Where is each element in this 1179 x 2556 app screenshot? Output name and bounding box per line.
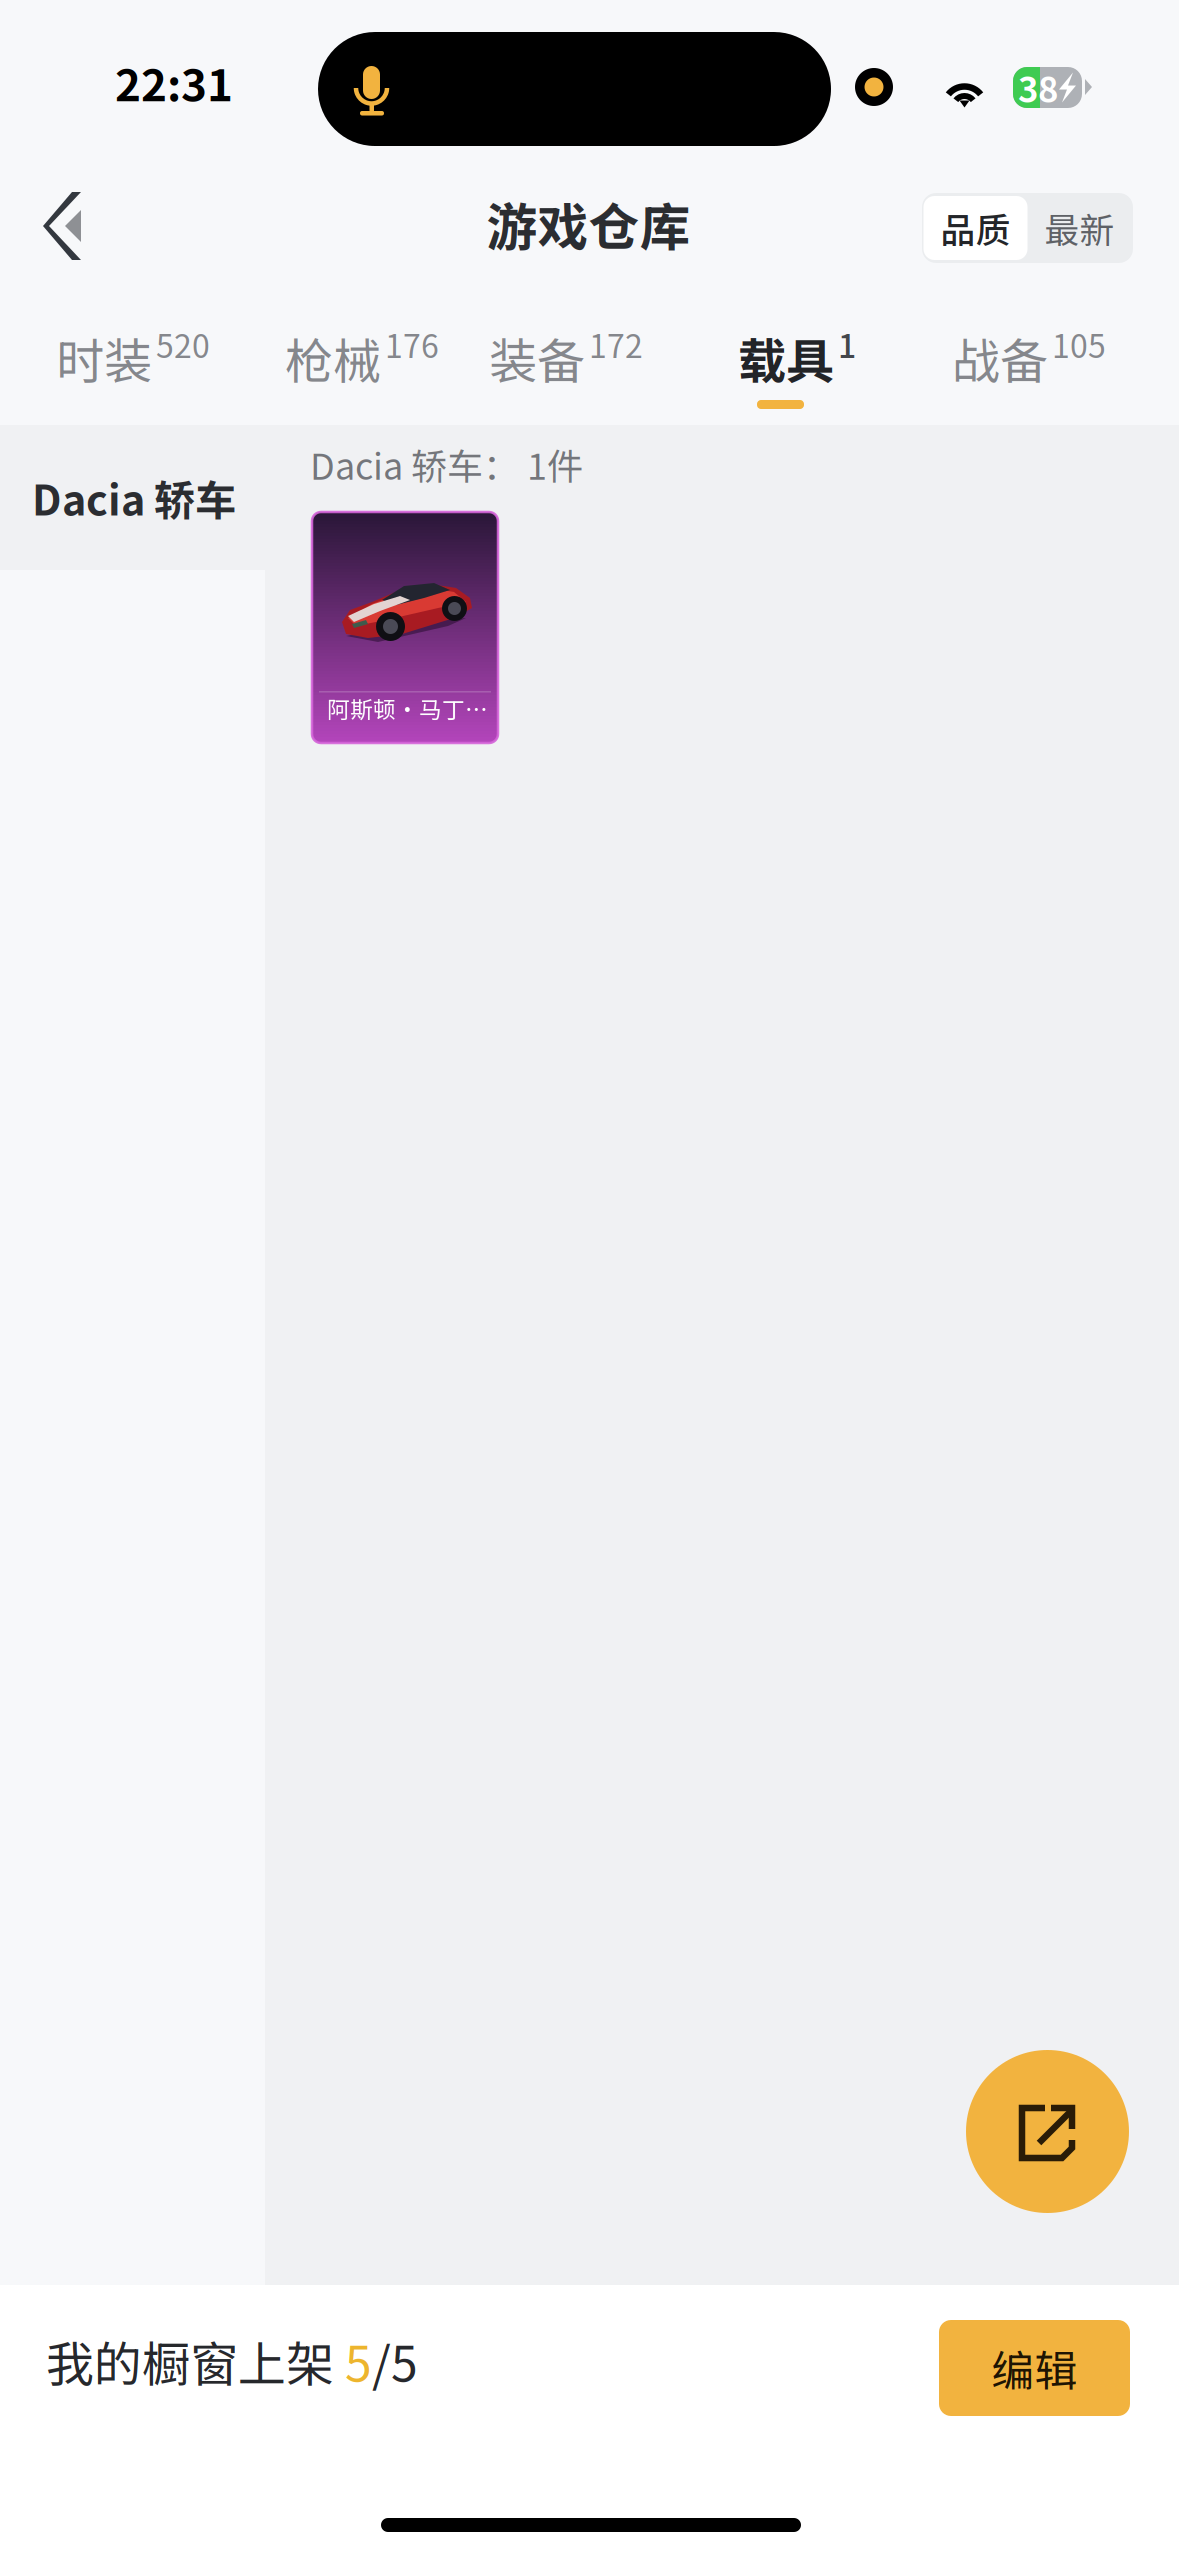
button[interactable]: 装备 bbox=[489, 294, 679, 425]
staticText: 载具 bbox=[738, 323, 834, 392]
staticText: 38 bbox=[1018, 62, 1058, 113]
staticText: 装备 bbox=[489, 323, 585, 392]
staticText: 520 bbox=[156, 321, 210, 367]
staticText: 时装 bbox=[56, 323, 152, 392]
button[interactable]: 时装 bbox=[56, 294, 246, 425]
button[interactable]: Share bbox=[966, 2050, 1129, 2213]
staticText: 最新 bbox=[1044, 203, 1114, 253]
button[interactable]: 品质 bbox=[923, 196, 1027, 260]
button[interactable]: 枪械 bbox=[285, 294, 475, 425]
staticText: 5 bbox=[345, 2326, 372, 2395]
staticText: 阿斯顿·马丁… bbox=[327, 692, 488, 724]
button[interactable]: Back bbox=[7, 170, 119, 282]
staticText: 战备 bbox=[952, 323, 1048, 392]
button[interactable]: Dacia 轿车 bbox=[0, 425, 265, 570]
button[interactable]: 编辑 bbox=[939, 2320, 1130, 2416]
staticText: 22:31 bbox=[115, 50, 233, 114]
staticText: Dacia 轿车： 1件 bbox=[310, 438, 583, 490]
staticText: 游戏仓库 bbox=[486, 187, 690, 260]
staticText: 品质 bbox=[940, 203, 1010, 253]
staticText: /5 bbox=[372, 2326, 418, 2395]
staticText: Dacia 轿车 bbox=[32, 468, 236, 527]
staticText: 我的橱窗上架 bbox=[46, 2326, 345, 2395]
button[interactable]: 载具 bbox=[738, 294, 928, 425]
staticText: 172 bbox=[589, 321, 643, 367]
staticText: 1 bbox=[838, 321, 856, 367]
staticText: 编辑 bbox=[991, 2337, 1077, 2399]
button[interactable]: 最新 bbox=[1027, 196, 1131, 260]
button[interactable]: 战备 bbox=[952, 294, 1142, 425]
button[interactable]: 阿斯顿·马丁… bbox=[312, 512, 498, 743]
staticText: 枪械 bbox=[285, 323, 381, 392]
staticText: 176 bbox=[385, 321, 439, 367]
staticText: 105 bbox=[1052, 321, 1106, 367]
